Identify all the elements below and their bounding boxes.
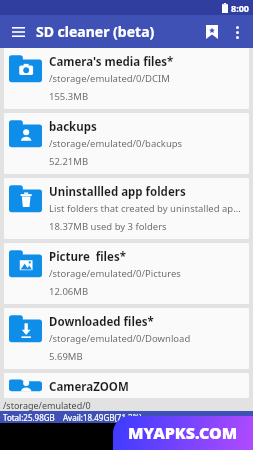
staticText: 12.06MB (49, 285, 89, 298)
button[interactable]: backups (4, 113, 249, 174)
staticText: Avail:18.49GB(71.2%) (63, 412, 142, 423)
button[interactable]: Camera's media files* (4, 48, 249, 109)
staticText: SD cleaner (beta) (36, 22, 155, 41)
button[interactable]: More options (225, 20, 249, 44)
staticText: 5.69MB (49, 350, 83, 363)
staticText: /storage/emulated/0/Download (49, 332, 191, 345)
staticText: MYAPKS.COM (128, 422, 238, 444)
button[interactable]: CameraZOOM (4, 373, 249, 398)
staticText: 52.21MB (49, 155, 89, 168)
staticText: List folders that created by uninstalled… (49, 202, 243, 215)
staticText: /storage/emulated/0/backups (49, 137, 183, 150)
staticText: Total:25.98GB (3, 412, 55, 423)
button[interactable]: Downloaded files* (4, 308, 249, 369)
staticText: /storage/emulated/0 (3, 399, 91, 411)
staticText: Picture files* (49, 249, 126, 265)
button[interactable]: Bookmarks (199, 19, 225, 45)
staticText: Downloaded files* (49, 314, 154, 330)
button[interactable]: Picture files* (4, 243, 249, 304)
staticText: 18.37MB used by 3 folders (49, 220, 167, 233)
staticText: 8:00 (231, 2, 249, 14)
staticText: /storage/emulated/0/Pictures (49, 267, 181, 280)
staticText: /storage/emulated/0/DCIM (49, 72, 170, 85)
button[interactable]: Back (114, 424, 140, 450)
staticText: CameraZOOM (49, 379, 129, 392)
button[interactable]: Open navigation menu (6, 20, 30, 44)
staticText: 155.3MB (49, 90, 89, 103)
staticText: Camera's media files* (49, 54, 174, 70)
staticText: backups (49, 119, 97, 135)
staticText: Uninstallled app folders (49, 184, 186, 200)
button[interactable]: Uninstallled app folders (4, 178, 249, 239)
